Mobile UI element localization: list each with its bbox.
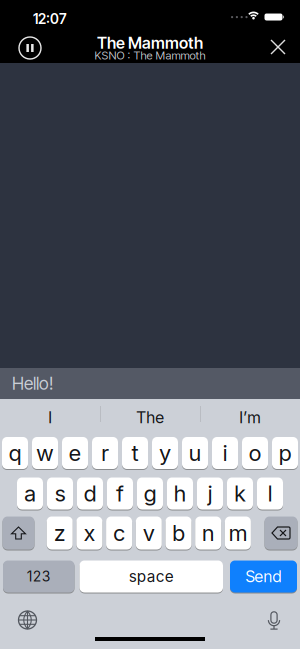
staticText: s: [54, 480, 65, 507]
staticText: i: [222, 440, 227, 466]
staticText: The: [136, 408, 164, 427]
staticText: 123: [27, 568, 51, 585]
button[interactable]: h: [167, 477, 193, 509]
staticText: q: [8, 440, 21, 466]
button[interactable]: g: [137, 477, 163, 509]
staticText: g: [143, 480, 156, 507]
button[interactable]: q: [2, 437, 28, 469]
staticText: I’m: [239, 408, 261, 427]
staticText: v: [143, 520, 155, 546]
button[interactable]: I: [0, 399, 100, 436]
button[interactable]: space: [79, 560, 223, 592]
button[interactable]: c: [106, 516, 132, 549]
button[interactable]: 123: [3, 560, 74, 592]
staticText: z: [54, 520, 66, 546]
button[interactable]: n: [195, 516, 221, 549]
button[interactable]: Close: [270, 39, 286, 55]
staticText: b: [172, 520, 185, 546]
staticText: y: [159, 440, 171, 466]
button[interactable]: z: [47, 516, 73, 549]
button[interactable]: v: [136, 516, 162, 549]
staticText: l: [267, 480, 272, 507]
button[interactable]: k: [227, 477, 253, 509]
staticText: m: [228, 520, 247, 546]
button[interactable]: s: [47, 477, 73, 509]
button[interactable]: The: [100, 399, 200, 436]
staticText: k: [234, 480, 246, 507]
button[interactable]: l: [257, 477, 283, 509]
button[interactable]: b: [165, 516, 191, 549]
button[interactable]: Send: [230, 560, 297, 592]
staticText: n: [202, 520, 215, 546]
staticText: Hello!: [12, 373, 53, 394]
staticText: o: [248, 440, 261, 466]
staticText: r: [101, 440, 109, 466]
button[interactable]: w: [32, 437, 58, 469]
staticText: I: [48, 408, 52, 427]
button[interactable]: Shift: [2, 516, 34, 549]
button[interactable]: f: [107, 477, 133, 509]
staticText: u: [188, 440, 201, 466]
button[interactable]: d: [77, 477, 103, 509]
button[interactable]: t: [122, 437, 148, 469]
button[interactable]: y: [152, 437, 178, 469]
button[interactable]: Next keyboard: [17, 610, 37, 630]
staticText: w: [36, 440, 54, 466]
staticText: x: [83, 520, 95, 546]
button[interactable]: u: [182, 437, 208, 469]
staticText: j: [207, 480, 212, 507]
button[interactable]: o: [242, 437, 268, 469]
staticText: f: [116, 480, 124, 507]
staticText: h: [173, 480, 186, 507]
button[interactable]: e: [62, 437, 88, 469]
button[interactable]: i: [212, 437, 238, 469]
button[interactable]: Pause: [18, 36, 42, 60]
staticText: space: [129, 567, 174, 586]
button[interactable]: j: [197, 477, 223, 509]
staticText: c: [113, 520, 125, 546]
button[interactable]: a: [17, 477, 43, 509]
staticText: p: [278, 440, 291, 466]
button[interactable]: I’m: [200, 399, 300, 436]
staticText: d: [83, 480, 96, 507]
staticText: The Mammoth: [97, 33, 203, 53]
staticText: t: [131, 440, 138, 466]
button[interactable]: x: [76, 516, 102, 549]
button[interactable]: r: [92, 437, 118, 469]
staticText: 12:07: [33, 10, 67, 27]
staticText: a: [24, 480, 36, 507]
staticText: KSNO : The Mammoth: [94, 49, 205, 62]
button[interactable]: m: [225, 516, 251, 549]
staticText: e: [68, 440, 81, 466]
staticText: Send: [245, 567, 281, 586]
button[interactable]: Dictation: [267, 610, 281, 631]
button[interactable]: p: [272, 437, 298, 469]
button[interactable]: Delete: [264, 516, 297, 549]
